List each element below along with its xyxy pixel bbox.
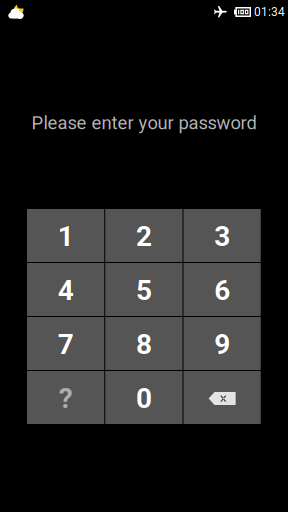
button[interactable]: 5 (105, 263, 182, 316)
button[interactable]: 4 (27, 263, 104, 316)
staticText: Please enter your password (31, 112, 256, 134)
button[interactable]: 2 (105, 209, 182, 262)
button[interactable]: 3 (183, 209, 261, 262)
staticText: 8 (136, 328, 152, 361)
button[interactable]: 0 (105, 371, 182, 424)
button[interactable]: Delete (183, 371, 261, 424)
button[interactable]: 8 (105, 317, 182, 370)
staticText: ? (59, 382, 73, 415)
staticText: 4 (58, 274, 74, 307)
staticText: 2 (136, 220, 152, 253)
staticText: 3 (214, 220, 230, 253)
button[interactable]: 9 (183, 317, 261, 370)
staticText: 7 (58, 328, 74, 361)
button[interactable]: 6 (183, 263, 261, 316)
staticText: 1 (58, 220, 74, 253)
staticText: 9 (214, 328, 230, 361)
button[interactable]: 7 (27, 317, 104, 370)
staticText: 6 (214, 274, 230, 307)
staticText: 5 (136, 274, 152, 307)
button[interactable]: 1 (27, 209, 104, 262)
button[interactable]: ? (27, 371, 104, 424)
staticText: 0 (136, 382, 152, 415)
staticText: 01:34 (254, 5, 285, 19)
